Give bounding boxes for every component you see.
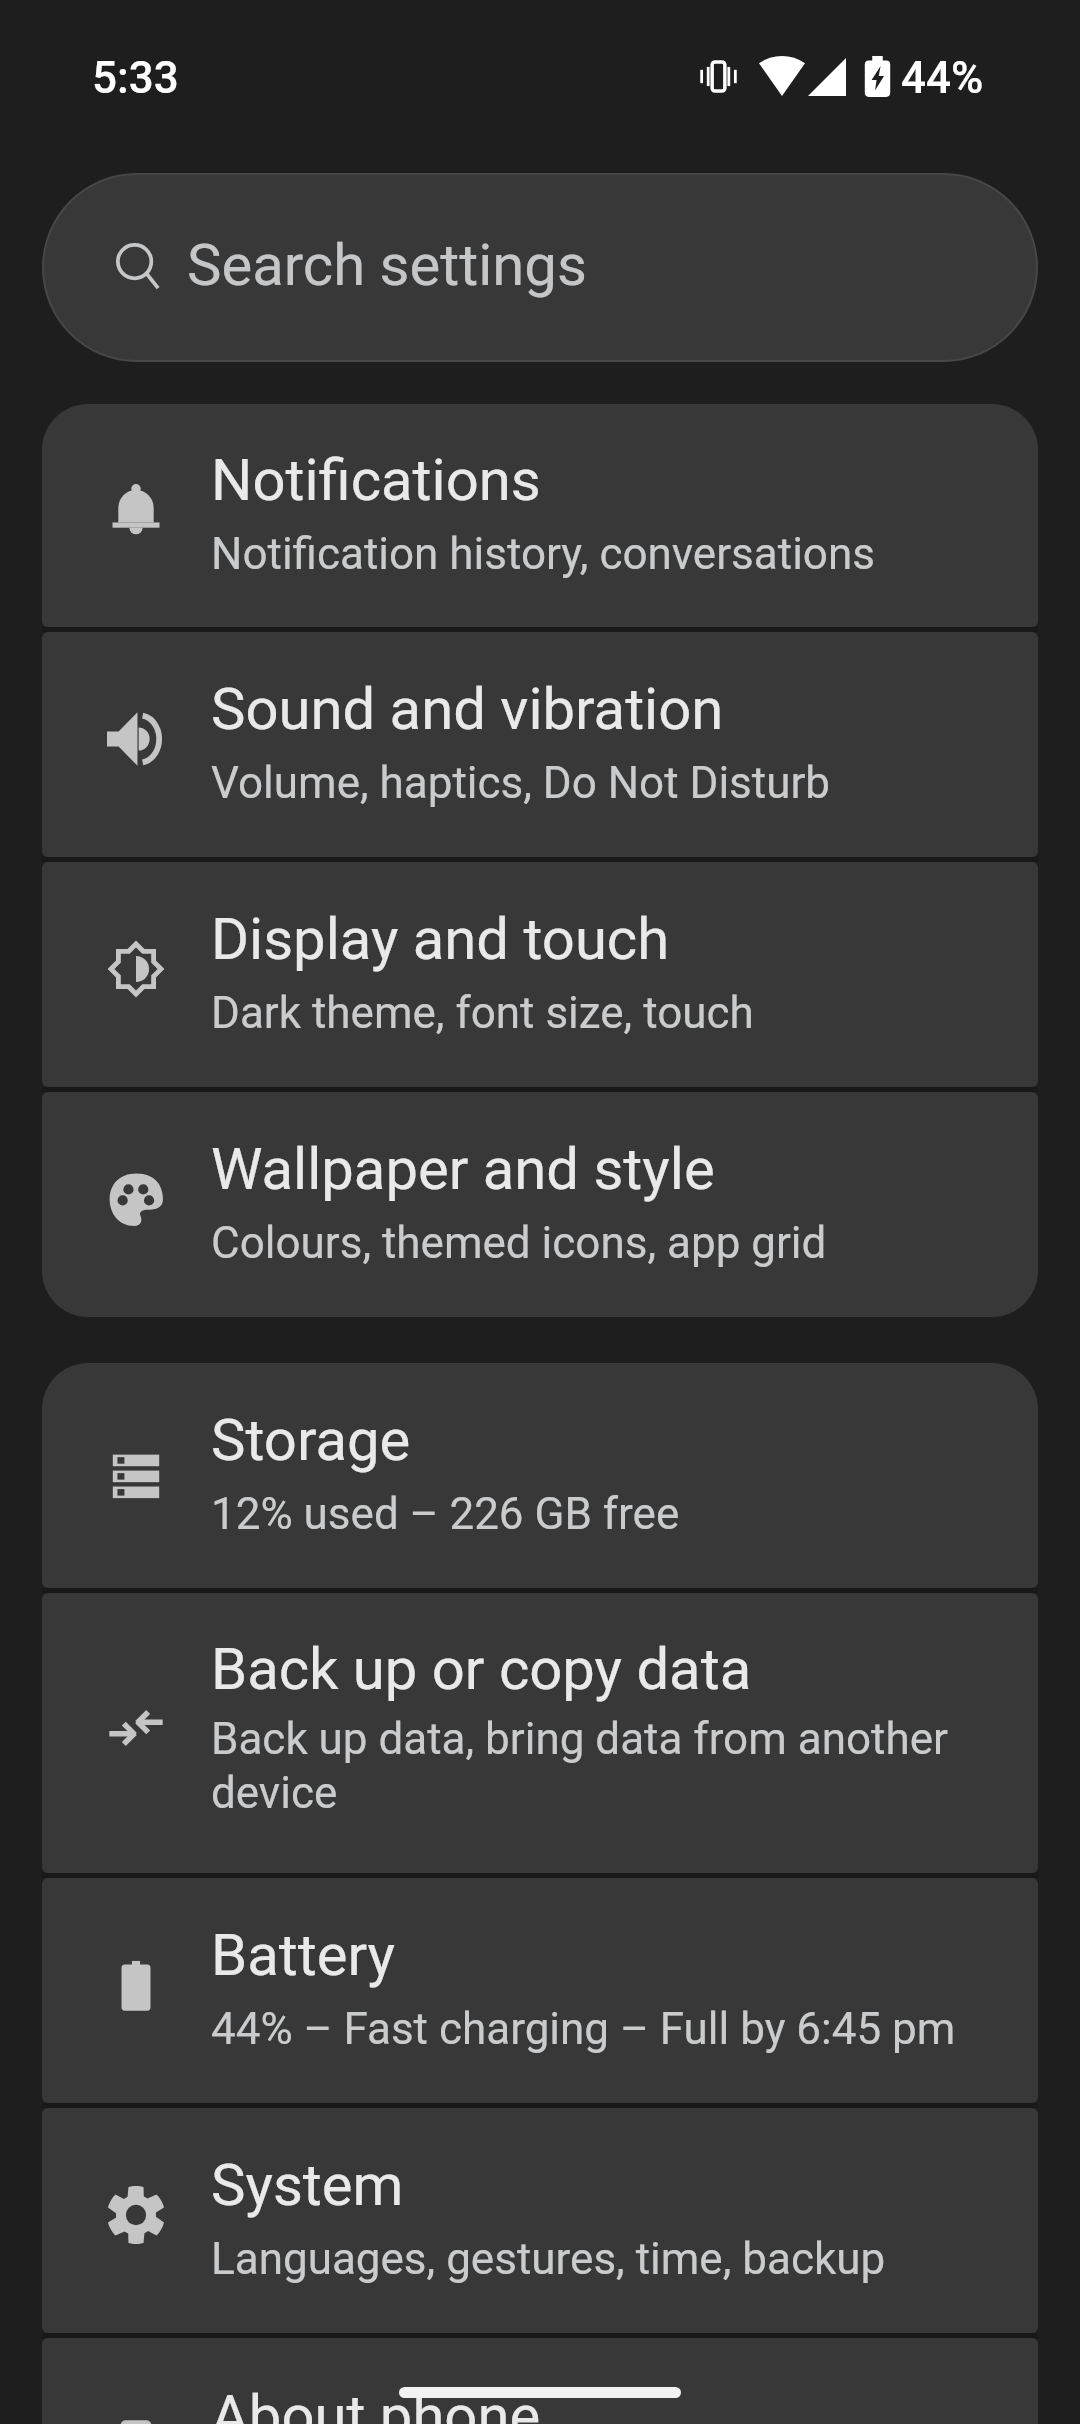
staticText: 44% – Fast charging – Full by 6:45 pm (211, 2003, 956, 2055)
button[interactable]: Wallpaper and style (42, 1092, 1038, 1317)
button[interactable]: Search settings (42, 173, 1038, 362)
button[interactable]: Notifications (42, 404, 1038, 627)
staticText: Sound and vibration (211, 675, 724, 743)
staticText: Back up or copy data (211, 1635, 752, 1703)
staticText: Colours, themed icons, app grid (211, 1217, 827, 1269)
button[interactable]: Sound and vibration (42, 632, 1038, 857)
button[interactable]: About phone (42, 2338, 1038, 2424)
staticText: About phone (211, 2382, 541, 2424)
staticText: Search settings (187, 231, 587, 299)
staticText: Back up data, bring data from another de… (211, 1713, 948, 1818)
button[interactable]: Battery (42, 1878, 1038, 2103)
staticText: Notification history, conversations (211, 528, 875, 580)
staticText: Dark theme, font size, touch (211, 987, 754, 1039)
staticText: Wallpaper and style (211, 1135, 715, 1203)
button[interactable]: Display and touch (42, 862, 1038, 1087)
staticText: 5:33 (92, 52, 179, 104)
staticText: Volume, haptics, Do Not Disturb (211, 757, 831, 809)
staticText: Display and touch (211, 905, 670, 973)
staticText: Storage (211, 1406, 411, 1474)
staticText: Battery (211, 1921, 395, 1989)
staticText: Languages, gestures, time, backup (211, 2233, 886, 2285)
staticText: 12% used – 226 GB free (211, 1488, 680, 1540)
button[interactable]: Back up or copy data (42, 1593, 1038, 1873)
staticText: 44% (901, 52, 984, 104)
staticText: System (211, 2151, 404, 2219)
staticText: Notifications (211, 446, 541, 514)
button[interactable]: Storage (42, 1363, 1038, 1588)
button[interactable]: System (42, 2108, 1038, 2333)
